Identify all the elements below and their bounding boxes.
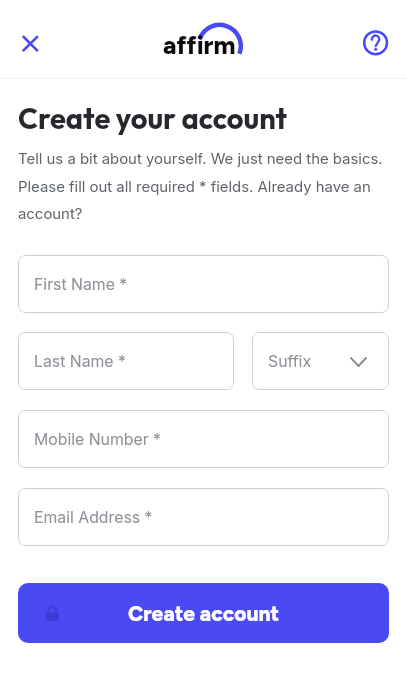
button[interactable]: Email Address * (18, 488, 389, 546)
staticText: affirm (163, 30, 236, 60)
staticText: Mobile Number * (34, 430, 161, 449)
staticText: Create your account (18, 100, 288, 137)
button[interactable]: Create account (18, 583, 389, 643)
button[interactable]: Close (9, 22, 51, 64)
button[interactable]: Suffix (252, 332, 389, 390)
button[interactable]: Help (355, 22, 397, 64)
button[interactable]: Last Name * (18, 332, 234, 390)
staticText: Suffix (268, 352, 312, 371)
staticText: Last Name * (34, 352, 126, 371)
button[interactable]: Mobile Number * (18, 410, 389, 468)
staticText: Email Address * (34, 508, 153, 527)
staticText: Tell us a bit about yourself. We just ne… (18, 150, 383, 222)
button[interactable]: First Name * (18, 255, 389, 313)
staticText: Create account (128, 601, 280, 626)
staticText: First Name * (34, 275, 128, 294)
